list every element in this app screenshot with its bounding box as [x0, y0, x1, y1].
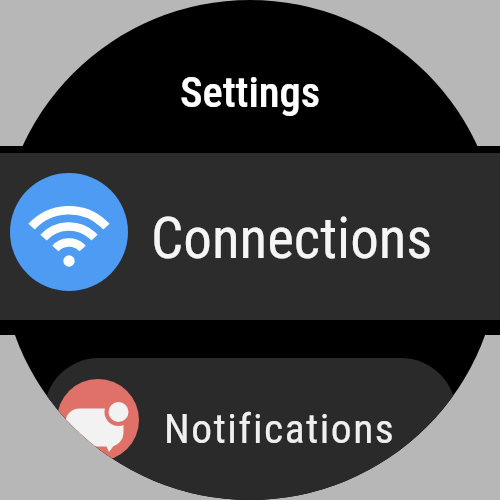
- staticText: Notifications: [164, 404, 396, 453]
- button[interactable]: [44, 358, 456, 500]
- staticText: Settings: [180, 68, 321, 118]
- button[interactable]: Connections: [0, 153, 500, 320]
- staticText: Connections: [151, 205, 433, 272]
